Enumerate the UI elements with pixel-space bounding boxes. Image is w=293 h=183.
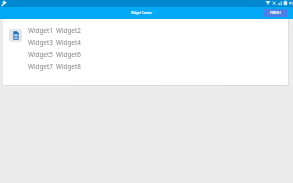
button[interactable]: FINISH (264, 9, 287, 17)
staticText: Widget6 (56, 50, 81, 59)
staticText: Widget5 (28, 50, 53, 59)
staticText: Widget4 (56, 38, 81, 47)
button[interactable]: Widget1 (3, 19, 288, 85)
staticText: FINISH (270, 11, 281, 15)
staticText: Widget1 (28, 26, 53, 35)
staticText: Widget2 (56, 26, 81, 35)
staticText: Widget3 (28, 38, 53, 47)
staticText: Widget Creator (131, 11, 153, 15)
staticText: Widget8 (56, 62, 81, 71)
staticText: Widget7 (28, 62, 53, 71)
